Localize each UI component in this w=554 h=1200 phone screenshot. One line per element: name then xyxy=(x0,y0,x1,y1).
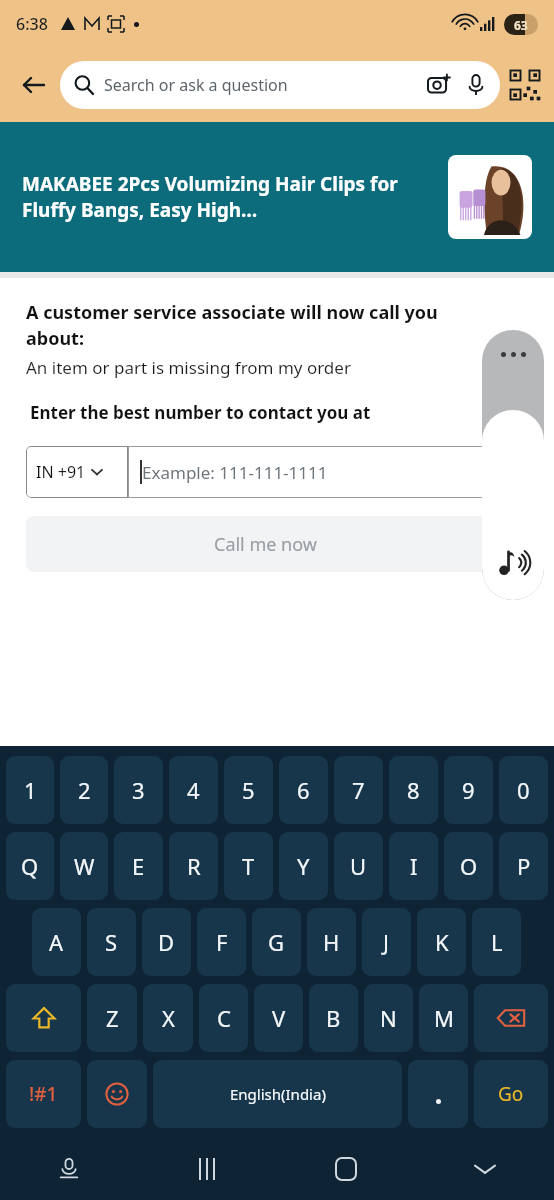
button[interactable]: K xyxy=(417,908,466,976)
staticText: H xyxy=(323,927,340,957)
button[interactable]: G xyxy=(252,908,301,976)
staticText: IN +91 xyxy=(36,461,86,483)
button[interactable]: Y xyxy=(279,832,328,900)
staticText: N xyxy=(380,1003,397,1033)
button[interactable]: Period xyxy=(408,1060,468,1128)
staticText: F xyxy=(216,927,228,957)
button[interactable]: 2 xyxy=(60,756,108,824)
staticText: A customer service associate will now ca… xyxy=(26,300,500,350)
staticText: J xyxy=(383,927,390,957)
button[interactable]: Example: 111-111-1111 xyxy=(128,446,505,498)
button[interactable]: J xyxy=(362,908,411,976)
button[interactable]: U xyxy=(334,832,383,900)
staticText: O xyxy=(460,851,478,881)
button[interactable]: V xyxy=(254,984,303,1052)
staticText: V xyxy=(272,1003,286,1033)
button[interactable]: T xyxy=(224,832,273,900)
staticText: D xyxy=(158,927,175,957)
button[interactable]: N xyxy=(364,984,413,1052)
staticText: X xyxy=(162,1003,175,1033)
button[interactable]: A xyxy=(32,908,81,976)
staticText: C xyxy=(217,1003,231,1033)
button[interactable]: E xyxy=(114,832,163,900)
button[interactable]: 5 xyxy=(224,756,273,824)
button[interactable]: R xyxy=(169,832,218,900)
button[interactable]: Search or ask a question xyxy=(60,61,500,109)
staticText: 4 xyxy=(187,775,200,805)
staticText: 1 xyxy=(24,775,37,805)
staticText: S xyxy=(105,927,118,957)
staticText: 8 xyxy=(407,775,420,805)
staticText: Y xyxy=(297,851,310,881)
other: Search with camera xyxy=(428,74,450,96)
staticText: P xyxy=(517,851,531,881)
staticText: Go xyxy=(498,1081,524,1107)
staticText: An item or part is missing from my order xyxy=(26,356,351,379)
button[interactable]: Emoji xyxy=(87,1060,147,1128)
staticText: 3 xyxy=(132,775,145,805)
button[interactable]: Call me now xyxy=(26,516,505,572)
button[interactable]: IN +91 xyxy=(26,446,128,498)
button[interactable]: L xyxy=(472,908,521,976)
button[interactable]: Hide keyboard xyxy=(415,1138,554,1200)
staticText: 2 xyxy=(78,775,91,805)
button[interactable]: 7 xyxy=(334,756,383,824)
button[interactable]: X xyxy=(143,984,193,1052)
staticText: L xyxy=(491,927,503,957)
button[interactable]: Symbols xyxy=(6,1060,81,1128)
staticText: English(India) xyxy=(230,1084,326,1104)
button[interactable]: Recent apps xyxy=(138,1138,276,1200)
button[interactable]: Go xyxy=(474,1060,548,1128)
staticText: B xyxy=(326,1003,341,1033)
staticText: Example: 111-111-1111 xyxy=(142,461,328,484)
button[interactable]: Q xyxy=(6,832,54,900)
button[interactable]: Home xyxy=(276,1138,415,1200)
staticText: Q xyxy=(21,851,39,881)
button[interactable]: 0 xyxy=(499,756,548,824)
staticText: Call me now xyxy=(214,532,317,557)
button[interactable]: Shift xyxy=(6,984,81,1052)
staticText: U xyxy=(350,851,367,881)
other: Voice search xyxy=(466,75,486,95)
staticText: Enter the best number to contact you at xyxy=(30,401,371,424)
button[interactable]: 1 xyxy=(6,756,54,824)
staticText: A xyxy=(49,927,64,957)
button[interactable]: H xyxy=(307,908,356,976)
button[interactable]: W xyxy=(60,832,108,900)
staticText: 63 xyxy=(514,17,528,33)
button[interactable]: P xyxy=(499,832,548,900)
staticText: 7 xyxy=(352,775,365,805)
button[interactable]: B xyxy=(309,984,358,1052)
staticText: T xyxy=(242,851,255,881)
button[interactable]: Z xyxy=(87,984,137,1052)
staticText: M xyxy=(434,1003,454,1033)
button[interactable]: 3 xyxy=(114,756,163,824)
staticText: 0 xyxy=(517,775,530,805)
staticText: K xyxy=(435,927,449,957)
staticText: !#1 xyxy=(29,1081,58,1107)
staticText: Z xyxy=(106,1003,119,1033)
staticText: R xyxy=(187,851,201,881)
button[interactable]: Sound assistant xyxy=(482,330,544,600)
button[interactable]: 9 xyxy=(444,756,493,824)
button[interactable]: I xyxy=(389,832,438,900)
staticText: 6:38 xyxy=(16,13,48,35)
button[interactable]: Scan code xyxy=(510,70,540,100)
button[interactable]: F xyxy=(197,908,246,976)
button[interactable]: D xyxy=(142,908,191,976)
button[interactable]: 4 xyxy=(169,756,218,824)
button[interactable]: Back xyxy=(14,65,54,105)
button[interactable]: MAKABEE 2Pcs Volumizing Hair Clips for F… xyxy=(0,122,554,272)
button[interactable]: S xyxy=(87,908,136,976)
staticText: G xyxy=(268,927,285,957)
button[interactable]: 6 xyxy=(279,756,328,824)
button[interactable]: M xyxy=(419,984,468,1052)
staticText: Search or ask a question xyxy=(104,74,428,96)
button[interactable]: Backspace xyxy=(474,984,548,1052)
staticText: W xyxy=(74,851,95,881)
button[interactable]: 8 xyxy=(389,756,438,824)
button[interactable]: C xyxy=(199,984,248,1052)
button[interactable]: Voice input xyxy=(0,1138,138,1200)
button[interactable]: O xyxy=(444,832,493,900)
button[interactable]: English(India) xyxy=(153,1060,402,1128)
